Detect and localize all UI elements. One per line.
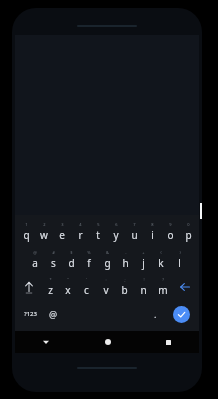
staticText: p bbox=[185, 228, 192, 242]
staticText: w bbox=[40, 228, 48, 242]
button[interactable]: $ bbox=[62, 247, 80, 273]
button[interactable]: @ bbox=[43, 301, 63, 327]
staticText: 4 bbox=[79, 222, 82, 227]
button[interactable]: ' bbox=[77, 274, 96, 300]
button[interactable]: + bbox=[134, 247, 152, 273]
staticText: 7 bbox=[133, 222, 136, 227]
staticText: 9 bbox=[169, 222, 172, 227]
button[interactable]: ? bbox=[153, 274, 172, 300]
staticText: g bbox=[104, 256, 111, 270]
staticText: % bbox=[87, 250, 91, 255]
staticText: $ bbox=[70, 250, 73, 255]
staticText: + bbox=[142, 250, 145, 255]
button[interactable]: Shift bbox=[17, 274, 41, 300]
staticText: l bbox=[178, 256, 181, 270]
button[interactable]: 2 bbox=[35, 218, 53, 246]
button[interactable]: 0 bbox=[179, 218, 197, 246]
staticText: @ bbox=[33, 250, 37, 255]
button[interactable]: ( bbox=[152, 247, 170, 273]
button[interactable]: ) bbox=[170, 247, 188, 273]
button[interactable]: @ bbox=[26, 247, 44, 273]
staticText: ) bbox=[179, 250, 181, 255]
button[interactable]: 8 bbox=[143, 218, 161, 246]
staticText: ? bbox=[162, 277, 164, 282]
staticText: 0 bbox=[187, 222, 190, 227]
button[interactable]: ?123 bbox=[17, 301, 43, 327]
staticText: - bbox=[125, 250, 127, 255]
staticText: @ bbox=[49, 308, 58, 320]
staticText: 2 bbox=[43, 222, 46, 227]
staticText: o bbox=[167, 228, 174, 242]
button[interactable]: . bbox=[145, 301, 165, 327]
staticText: h bbox=[122, 256, 129, 270]
staticText: c bbox=[84, 283, 89, 297]
staticText: k bbox=[158, 256, 164, 270]
button[interactable]: 5 bbox=[89, 218, 107, 246]
staticText: r bbox=[78, 228, 83, 242]
staticText: 3 bbox=[61, 222, 64, 227]
staticText: . bbox=[154, 308, 157, 320]
staticText: q bbox=[23, 228, 30, 242]
staticText: ( bbox=[160, 250, 162, 255]
button[interactable]: ; bbox=[115, 274, 134, 300]
staticText: 8 bbox=[151, 222, 154, 227]
staticText: a bbox=[32, 256, 38, 270]
button[interactable]: " bbox=[59, 274, 77, 300]
staticText: ; bbox=[124, 277, 126, 282]
button[interactable]: 7 bbox=[125, 218, 143, 246]
button[interactable]: * bbox=[41, 274, 59, 300]
button[interactable]: 6 bbox=[107, 218, 125, 246]
button[interactable]: ! bbox=[134, 274, 153, 300]
staticText: * bbox=[49, 277, 52, 282]
staticText: z bbox=[48, 283, 53, 297]
staticText: f bbox=[87, 256, 91, 270]
staticText: 5 bbox=[97, 222, 100, 227]
staticText: ! bbox=[143, 277, 145, 282]
button[interactable]: Back bbox=[15, 331, 77, 353]
staticText: b bbox=[121, 283, 128, 297]
staticText: ?123 bbox=[24, 310, 37, 318]
staticText: u bbox=[131, 228, 138, 242]
staticText: m bbox=[158, 283, 168, 297]
staticText: s bbox=[51, 256, 56, 270]
staticText: " bbox=[67, 277, 69, 282]
button[interactable]: : bbox=[96, 274, 115, 300]
button[interactable]: Recents bbox=[138, 331, 199, 353]
button[interactable]: Enter bbox=[173, 306, 190, 323]
button[interactable]: Backspace bbox=[172, 274, 197, 300]
staticText: 1 bbox=[25, 222, 28, 227]
staticText: 6 bbox=[115, 222, 118, 227]
staticText: t bbox=[96, 228, 100, 242]
button[interactable]: % bbox=[80, 247, 98, 273]
button[interactable]: Home bbox=[77, 331, 138, 353]
button[interactable]: # bbox=[44, 247, 62, 273]
staticText: v bbox=[103, 283, 109, 297]
staticText: y bbox=[113, 228, 119, 242]
staticText: i bbox=[151, 228, 154, 242]
staticText: # bbox=[52, 250, 55, 255]
staticText: e bbox=[59, 228, 65, 242]
staticText: ' bbox=[86, 277, 87, 282]
button[interactable]: - bbox=[116, 247, 134, 273]
button[interactable]: 9 bbox=[161, 218, 179, 246]
staticText: j bbox=[142, 256, 145, 270]
button[interactable]: 1 bbox=[17, 218, 35, 246]
staticText: & bbox=[106, 250, 109, 255]
staticText: d bbox=[68, 256, 75, 270]
button[interactable]: 3 bbox=[53, 218, 71, 246]
button[interactable]: & bbox=[98, 247, 116, 273]
staticText: n bbox=[140, 283, 147, 297]
button[interactable]: 4 bbox=[71, 218, 89, 246]
staticText: x bbox=[65, 283, 71, 297]
staticText: : bbox=[105, 277, 107, 282]
